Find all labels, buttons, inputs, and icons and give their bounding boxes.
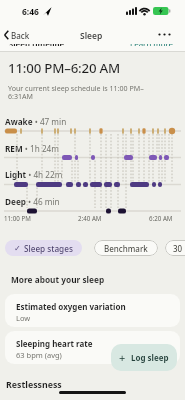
button[interactable]: 30 xyxy=(173,240,185,256)
staticText: 63 bpm (avg) xyxy=(16,350,62,360)
button[interactable]: ✓ xyxy=(14,240,73,256)
staticText: 11:00 PM xyxy=(4,214,31,222)
staticText: ✓ xyxy=(14,244,21,253)
staticText: + xyxy=(119,350,126,365)
staticText: Back xyxy=(11,30,30,41)
staticText: Benchmark xyxy=(104,243,148,254)
button[interactable]: Sleeping heart rate xyxy=(5,331,180,364)
staticText: Light • 4h 22m xyxy=(5,169,63,180)
staticText: Restlessness xyxy=(6,379,62,391)
staticText: 6:20 AM xyxy=(149,214,173,222)
staticText: 30 xyxy=(173,243,183,254)
button[interactable]: + xyxy=(111,344,177,371)
staticText: More about your sleep xyxy=(11,274,105,285)
staticText: 2:40 AM xyxy=(78,214,102,222)
staticText: Sleeping heart rate xyxy=(16,338,93,349)
staticText: Log sleep xyxy=(131,352,169,363)
staticText: 6:46 xyxy=(22,6,39,18)
staticText: REM • 1h 24m xyxy=(5,143,59,154)
button[interactable]: Learn more xyxy=(0,44,44,51)
staticText: Your current sleep schedule is 11:00 PM–… xyxy=(8,83,144,101)
staticText: Deep • 46 min xyxy=(5,196,60,207)
staticText: 11:00 PM–6:20 AM xyxy=(8,59,121,77)
button[interactable]: Estimated oxygen variation xyxy=(5,294,180,327)
button[interactable]: Benchmark xyxy=(104,240,148,256)
staticText: Awake • 47 min xyxy=(5,116,67,127)
staticText: Sleep stages xyxy=(24,243,73,254)
staticText: Sleep timeline xyxy=(9,44,65,46)
staticText: Sleep xyxy=(80,30,103,42)
button[interactable] xyxy=(157,28,175,40)
staticText: Estimated oxygen variation xyxy=(16,301,126,312)
staticText: Low xyxy=(16,313,31,323)
button[interactable]: Back xyxy=(2,28,30,42)
